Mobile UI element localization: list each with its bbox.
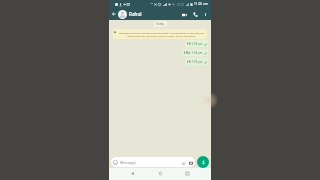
staticText: Hi xyxy=(187,41,191,46)
staticText: 1:53 pm xyxy=(192,42,203,46)
button[interactable]: Home xyxy=(156,169,165,178)
button[interactable]: Messages and calls are end-to-end encryp… xyxy=(113,29,207,39)
button[interactable]: Message xyxy=(111,157,195,167)
button[interactable]: Back xyxy=(128,169,137,178)
button[interactable]: Call xyxy=(191,10,200,19)
button[interactable]: Video call xyxy=(180,10,189,19)
button[interactable]: Hlo xyxy=(182,49,208,56)
staticText: Messages and calls are end-to-end encryp… xyxy=(117,31,206,37)
button[interactable]: Camera xyxy=(188,160,193,165)
button[interactable]: Voice message xyxy=(197,156,209,168)
staticText: 1:53 pm xyxy=(192,60,203,64)
button[interactable]: Hi xyxy=(185,58,208,65)
button[interactable]: Attach xyxy=(181,160,186,165)
staticText: Hlo xyxy=(184,50,191,55)
staticText: 11:26 am xyxy=(194,2,208,6)
staticText: Rahul xyxy=(129,11,142,17)
staticText: 1:53 pm xyxy=(192,51,203,55)
button[interactable]: More options xyxy=(202,11,209,18)
button[interactable]: Today xyxy=(154,21,167,27)
staticText: ••• xyxy=(150,2,153,6)
staticText: Today xyxy=(156,22,165,26)
button[interactable]: Profile photo xyxy=(118,10,127,19)
staticText: Hi xyxy=(187,59,191,64)
button[interactable]: Back xyxy=(111,11,117,17)
staticText: Message xyxy=(120,160,136,165)
button[interactable]: Hi xyxy=(185,40,208,47)
button[interactable]: Recents xyxy=(183,169,192,178)
